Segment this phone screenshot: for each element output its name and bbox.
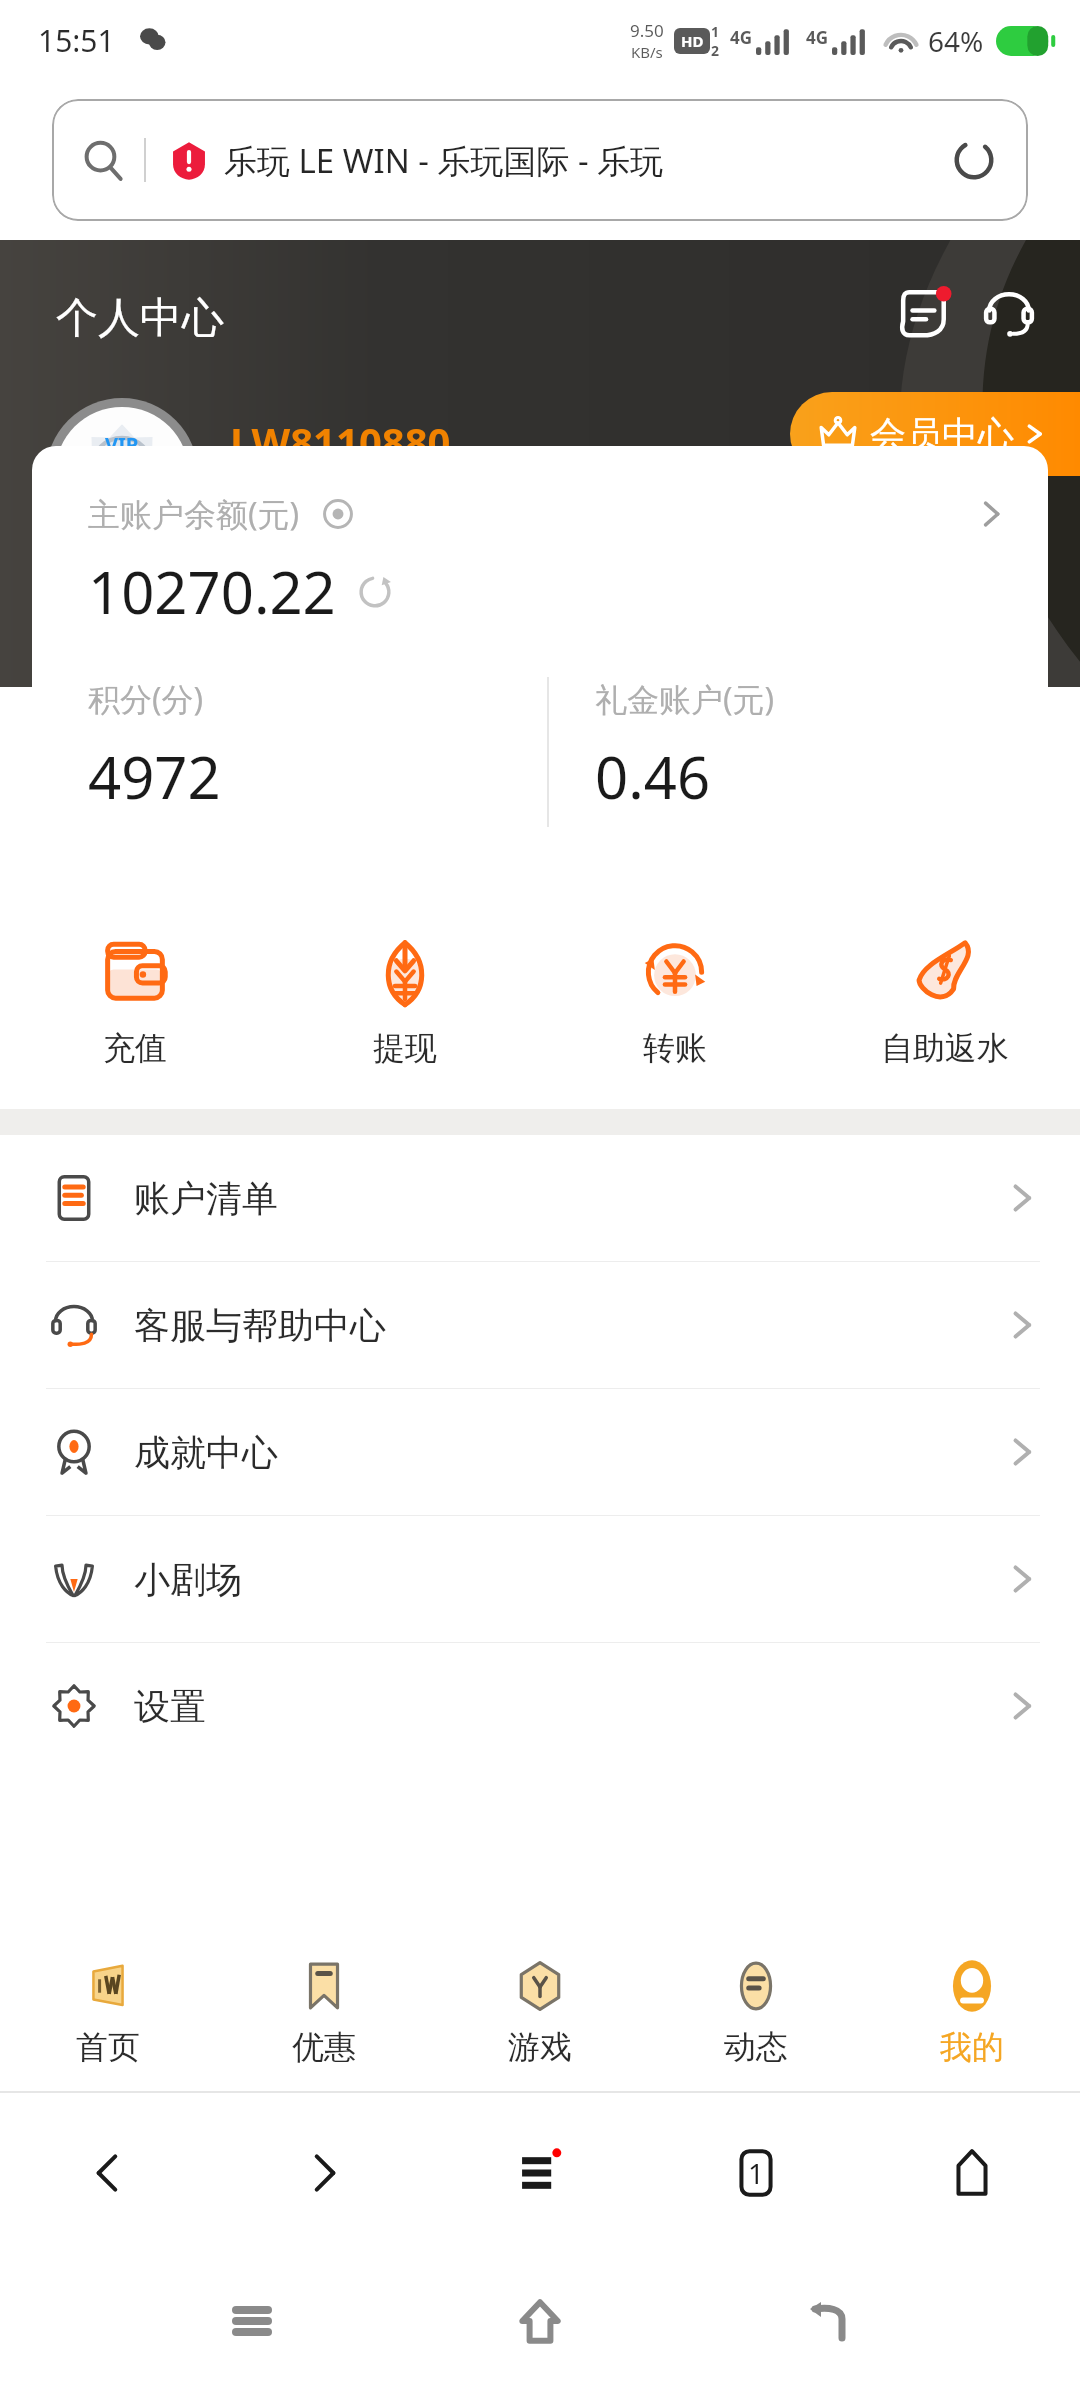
staticText: 自助返水 xyxy=(881,1028,1009,1068)
button[interactable]: 客服与帮助中心 xyxy=(0,1262,1080,1389)
staticText: 15:51 xyxy=(38,20,115,61)
button[interactable]: 设置 xyxy=(0,1643,1080,1769)
staticText: 9.50 xyxy=(630,19,664,42)
staticText: 首页 xyxy=(76,2027,140,2067)
staticText: 1 xyxy=(112,458,132,504)
staticText: 1 xyxy=(748,2154,765,2192)
staticText: 2 xyxy=(711,41,720,60)
button[interactable]: Home xyxy=(864,2093,1080,2253)
button[interactable]: Reload xyxy=(950,136,998,184)
staticText: 积分(分) xyxy=(88,677,204,721)
staticText: KB/s xyxy=(631,42,663,62)
button[interactable]: Toggle visibility xyxy=(322,498,354,530)
staticText: 小剧场 xyxy=(134,1557,242,1602)
button[interactable]: Messages xyxy=(894,282,956,344)
staticText: 10270.22 xyxy=(88,552,336,631)
button[interactable]: Back xyxy=(0,2093,216,2253)
staticText: 1 xyxy=(711,22,720,41)
button[interactable]: Support xyxy=(978,282,1040,344)
staticText: 游戏 xyxy=(508,2027,572,2067)
button[interactable]: 首页 xyxy=(0,1931,216,2091)
button[interactable]: 账户清单 xyxy=(0,1135,1080,1262)
staticText: 充值 xyxy=(103,1028,167,1068)
button[interactable]: Home xyxy=(420,2253,660,2388)
staticText: 礼金账户(元) xyxy=(595,677,775,721)
button[interactable]: 乐玩 LE WIN - 乐玩国际 - 乐玩 xyxy=(52,99,1028,221)
button[interactable]: 成就中心 xyxy=(0,1389,1080,1516)
staticText: 设置 xyxy=(134,1684,206,1729)
button[interactable]: 充值 xyxy=(0,893,270,1109)
button[interactable]: 游戏 xyxy=(432,1931,648,2091)
staticText: 4G xyxy=(806,26,829,49)
button[interactable]: Menu xyxy=(432,2093,648,2253)
staticText: 成就中心 xyxy=(134,1430,278,1475)
staticText: 账户清单 xyxy=(134,1176,278,1221)
staticText: VIP xyxy=(105,431,139,458)
staticText: 动态 xyxy=(724,2027,788,2067)
button[interactable]: Tabs xyxy=(648,2093,864,2253)
button[interactable]: 自助返水 xyxy=(810,893,1080,1109)
staticText: 客服与帮助中心 xyxy=(134,1303,386,1348)
button[interactable]: 会员中心 xyxy=(790,392,1080,476)
staticText: VIP1 xyxy=(280,489,340,527)
staticText: 个人中心 xyxy=(56,292,224,345)
button[interactable]: Back xyxy=(708,2253,948,2388)
staticText: 64% xyxy=(928,22,984,60)
button[interactable]: 主账户余额(元) xyxy=(32,446,1048,893)
button[interactable]: 转账 xyxy=(540,893,810,1109)
staticText: LW8110880 xyxy=(230,414,451,468)
button[interactable]: Refresh xyxy=(354,571,396,613)
button[interactable]: VIP1 xyxy=(230,482,356,534)
staticText: 主账户余额(元) xyxy=(88,492,300,536)
button[interactable]: 我的 xyxy=(864,1931,1080,2091)
staticText: 0.46 xyxy=(595,737,711,816)
button[interactable]: 小剧场 xyxy=(0,1516,1080,1643)
staticText: 乐玩 LE WIN - 乐玩国际 - 乐玩 xyxy=(224,138,938,183)
button[interactable]: Forward xyxy=(216,2093,432,2253)
staticText: 会员中心 xyxy=(870,412,1014,457)
button[interactable]: Recents xyxy=(132,2253,372,2388)
button[interactable]: 优惠 xyxy=(216,1931,432,2091)
staticText: HD xyxy=(681,31,704,51)
button[interactable]: 提现 xyxy=(270,893,540,1109)
staticText: 提现 xyxy=(373,1028,437,1068)
staticText: 4G xyxy=(730,26,753,49)
staticText: 优惠 xyxy=(292,2027,356,2067)
staticText: 转账 xyxy=(643,1028,707,1068)
staticText: 我的 xyxy=(940,2027,1004,2067)
staticText: 4972 xyxy=(88,737,221,816)
button[interactable]: 动态 xyxy=(648,1931,864,2091)
